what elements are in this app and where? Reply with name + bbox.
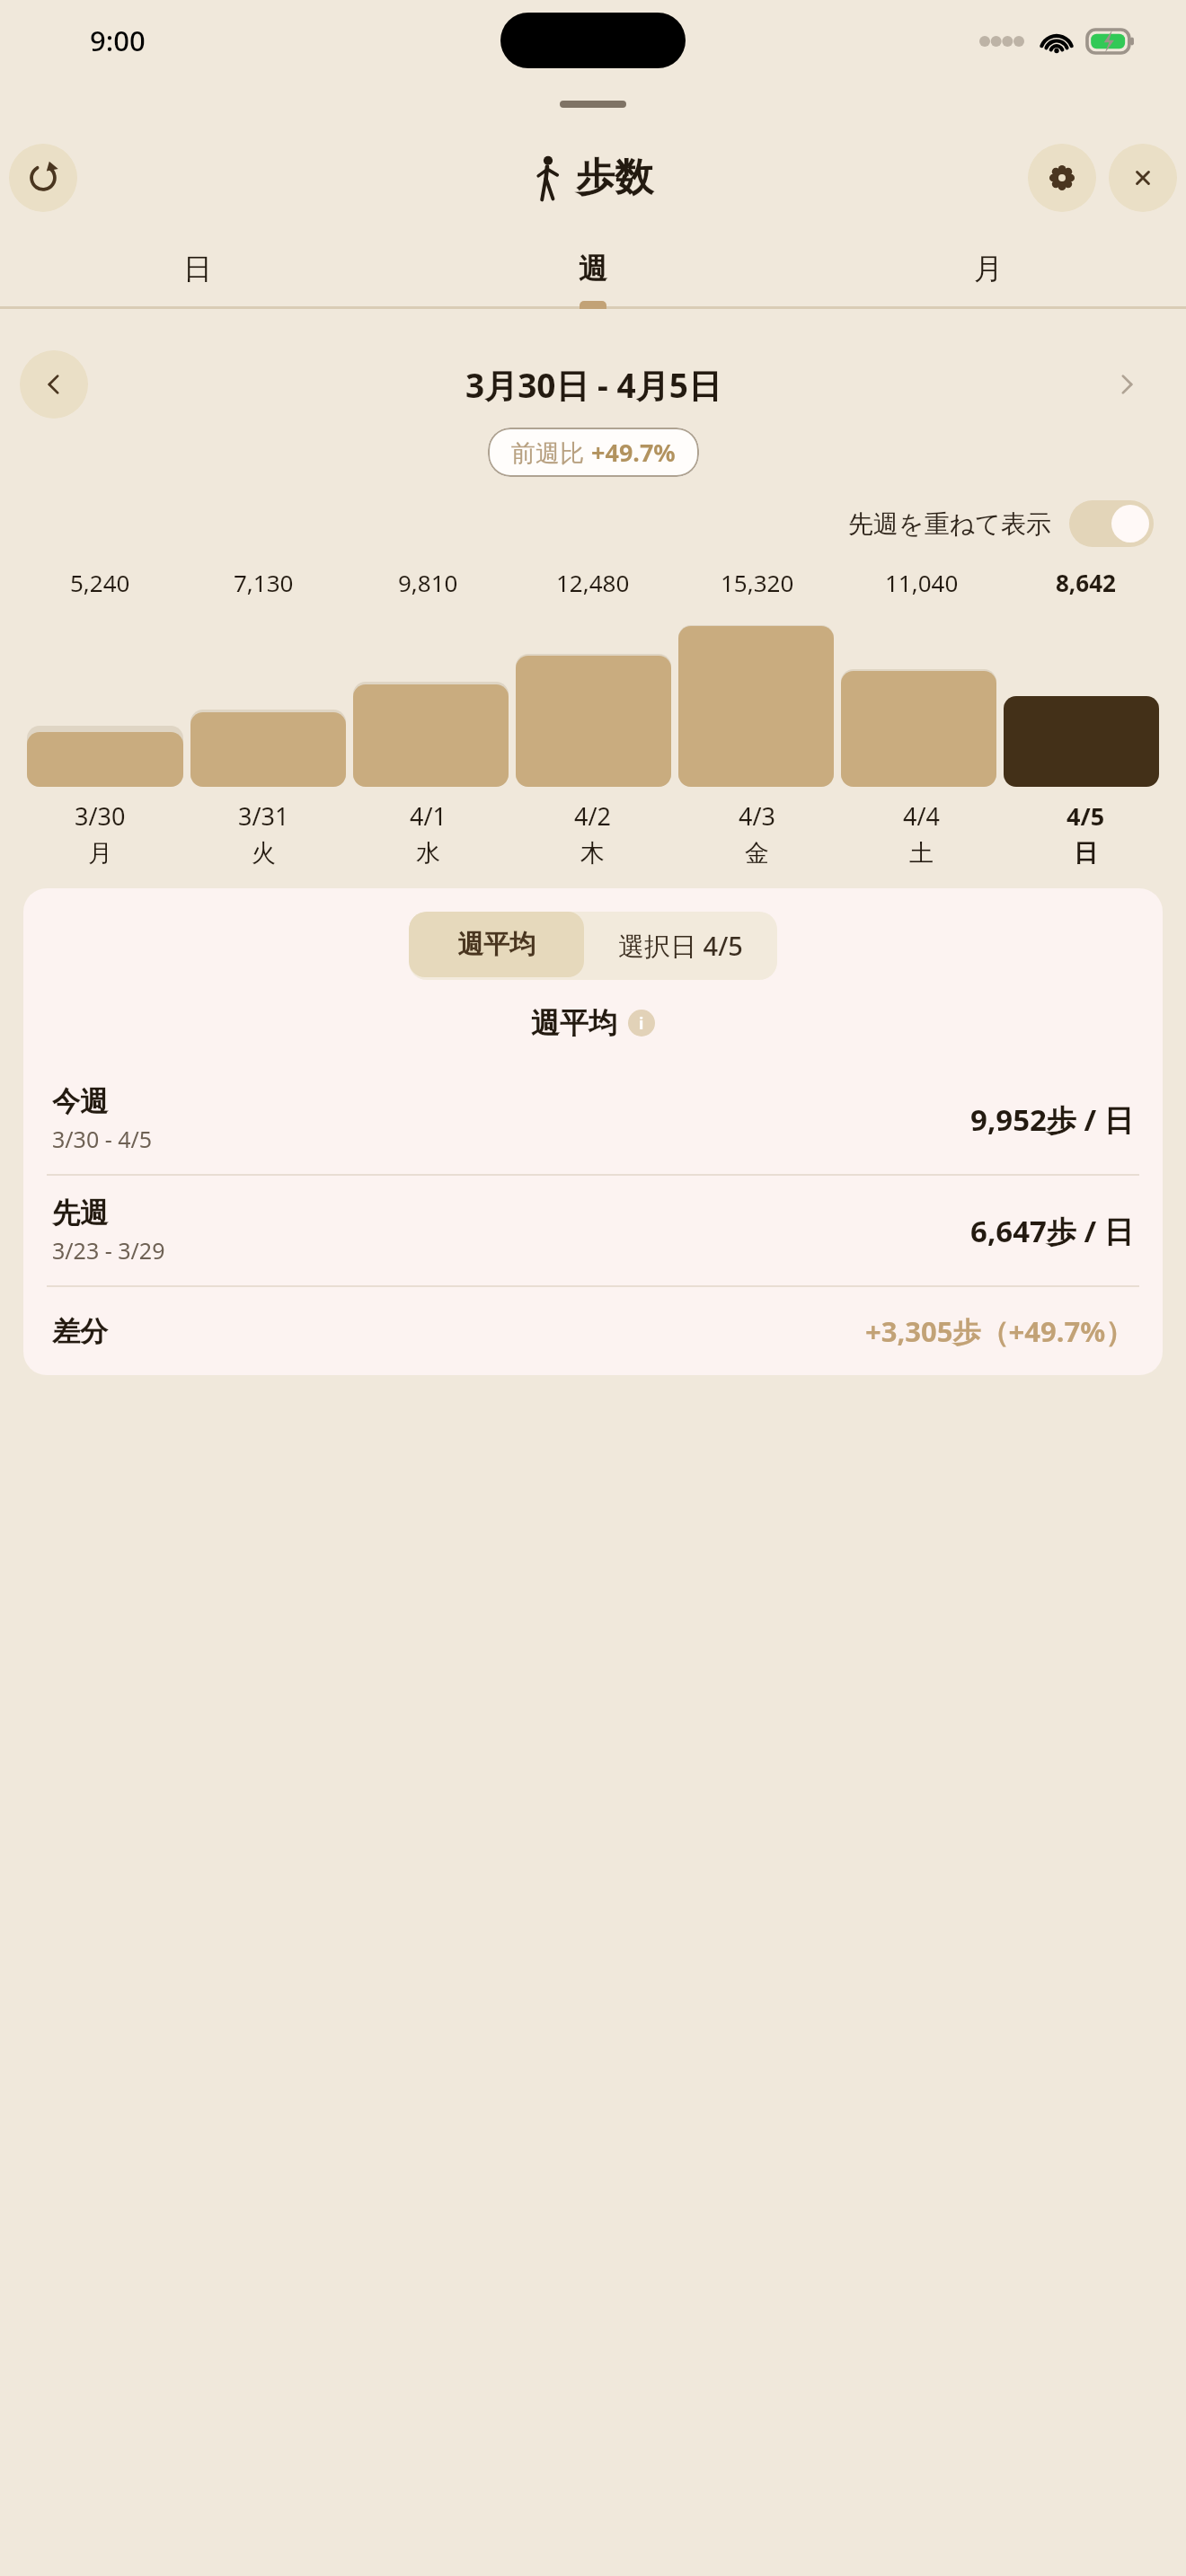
staticText: 5,240 — [70, 567, 130, 598]
button[interactable]: 週 — [395, 228, 791, 309]
button[interactable]: 先週を重ねて表示 — [848, 500, 1154, 547]
button[interactable]: 先週 — [52, 1195, 1134, 1266]
staticText: 週平均 — [457, 928, 535, 961]
staticText: 先週 — [52, 1195, 108, 1231]
staticText: 今週 — [52, 1084, 108, 1119]
button[interactable] — [27, 611, 183, 787]
button[interactable]: 選択日 4/5 — [618, 928, 743, 964]
staticText: 3/23 - 3/29 — [52, 1235, 165, 1266]
staticText: 差分 — [52, 1314, 108, 1349]
button[interactable] — [516, 611, 671, 787]
button[interactable] — [1004, 611, 1159, 787]
staticText: 火 — [252, 838, 276, 869]
staticText: 8,642 — [1056, 567, 1116, 598]
button[interactable]: 週平均 — [457, 928, 535, 961]
staticText: 日 — [183, 251, 212, 287]
staticText: 7,130 — [234, 567, 294, 598]
staticText: 12,480 — [556, 567, 630, 598]
staticText: 先週を重ねて表示 — [848, 508, 1051, 540]
staticText: 9,810 — [398, 567, 458, 598]
button[interactable]: Refresh — [9, 144, 77, 212]
staticText: 4/1 — [410, 799, 447, 833]
button[interactable]: Previous week — [20, 350, 88, 419]
staticText: 3/30 - 4/5 — [52, 1124, 153, 1154]
staticText: 金 — [745, 838, 769, 869]
staticText: 11,040 — [885, 567, 959, 598]
button[interactable]: 日 — [0, 228, 395, 309]
staticText: 15,320 — [721, 567, 794, 598]
staticText: 3月30日 - 4月5日 — [465, 362, 721, 408]
staticText: 4/5 — [1067, 799, 1105, 833]
staticText: 前週比 — [511, 436, 591, 469]
staticText: 9,952歩 / 日 — [970, 1099, 1134, 1140]
button[interactable]: 前週比 — [511, 436, 676, 469]
staticText: 週 — [579, 251, 607, 287]
button[interactable]: 月 — [791, 228, 1186, 309]
staticText: 週平均 — [531, 1005, 617, 1041]
staticText: 選択日 4/5 — [618, 928, 743, 964]
button[interactable]: Close — [1109, 144, 1177, 212]
staticText: 4/4 — [903, 799, 940, 833]
staticText: 3/31 — [238, 799, 289, 833]
button[interactable]: 今週 — [52, 1084, 1134, 1154]
staticText: 日 — [1074, 838, 1098, 869]
button[interactable]: Settings — [1028, 144, 1096, 212]
button[interactable] — [841, 611, 996, 787]
button[interactable]: Info — [628, 1010, 655, 1037]
button[interactable] — [190, 611, 346, 787]
button[interactable] — [353, 611, 509, 787]
staticText: 9:00 — [90, 22, 146, 59]
staticText: +49.7% — [591, 436, 676, 469]
staticText: +3,305歩（+49.7%） — [865, 1312, 1134, 1350]
staticText: 月 — [974, 251, 1003, 287]
staticText: 4/3 — [739, 799, 775, 833]
staticText: i — [639, 1012, 644, 1035]
button[interactable] — [678, 611, 834, 787]
staticText: 月 — [88, 838, 112, 869]
staticText: 4/2 — [574, 799, 611, 833]
staticText: 土 — [909, 838, 934, 869]
staticText: 水 — [416, 838, 440, 869]
staticText: 3/30 — [75, 799, 126, 833]
staticText: 6,647歩 / 日 — [970, 1211, 1134, 1251]
button[interactable]: Next week — [1093, 350, 1161, 419]
staticText: 木 — [580, 838, 605, 869]
staticText: 歩数 — [576, 154, 653, 202]
